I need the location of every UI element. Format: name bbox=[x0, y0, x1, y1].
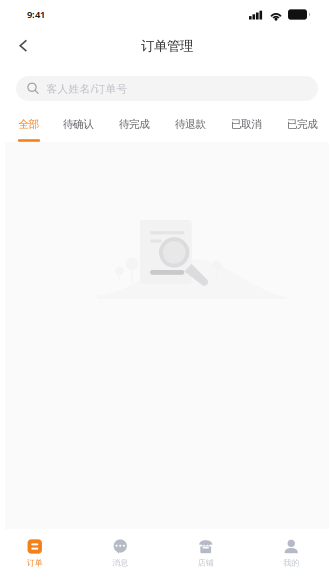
button[interactable]: 待确认 bbox=[63, 118, 119, 142]
button[interactable]: 消息 bbox=[77, 529, 163, 576]
button[interactable]: 客人姓名/订单号 bbox=[16, 76, 318, 101]
button[interactable]: 已取消 bbox=[231, 118, 287, 142]
staticText: 待确认 bbox=[63, 118, 94, 131]
staticText: 订单管理 bbox=[141, 38, 193, 54]
button[interactable]: 已完成 bbox=[287, 118, 318, 142]
staticText: 客人姓名/订单号 bbox=[46, 81, 127, 96]
button[interactable]: 待退款 bbox=[175, 118, 231, 142]
staticText: 店铺 bbox=[198, 558, 214, 568]
staticText: 消息 bbox=[112, 558, 128, 568]
staticText: 待完成 bbox=[119, 118, 150, 131]
staticText: 9:41 bbox=[27, 8, 45, 21]
staticText: 已取消 bbox=[231, 118, 262, 131]
staticText: 订单 bbox=[27, 558, 43, 568]
button[interactable]: 全部 bbox=[18, 118, 63, 142]
staticText: 待退款 bbox=[175, 118, 206, 131]
button[interactable]: 待完成 bbox=[119, 118, 175, 142]
button[interactable]: Back bbox=[5, 29, 40, 63]
staticText: 全部 bbox=[18, 118, 40, 131]
button[interactable]: 店铺 bbox=[163, 529, 248, 576]
staticText: 我的 bbox=[283, 558, 299, 568]
button[interactable]: 订单 bbox=[0, 529, 77, 576]
button[interactable]: 我的 bbox=[248, 529, 334, 576]
staticText: 已完成 bbox=[287, 118, 318, 131]
